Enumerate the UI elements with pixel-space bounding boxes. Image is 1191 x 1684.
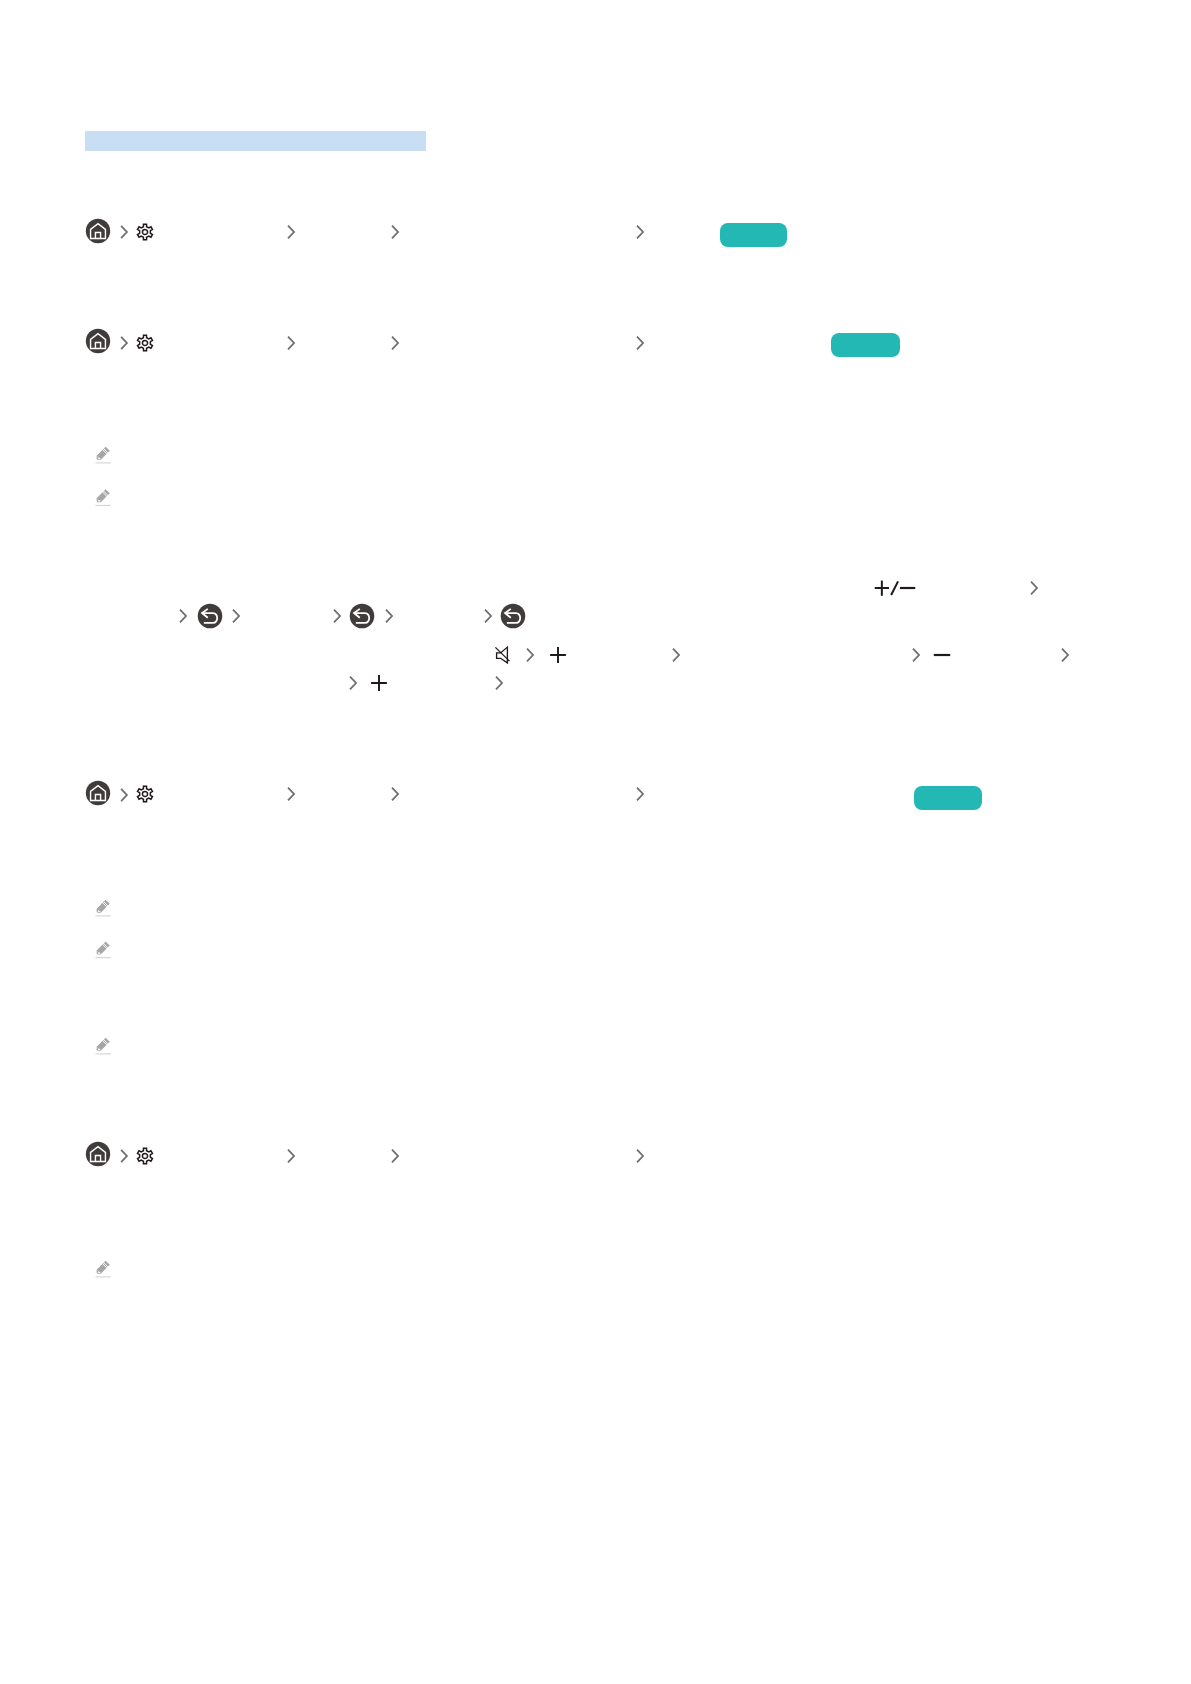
button[interactable]: Remove [931, 644, 953, 666]
button[interactable]: Next [909, 646, 923, 664]
button[interactable]: Next [523, 646, 537, 664]
button[interactable]: Try Now [914, 786, 982, 810]
button[interactable]: Add [547, 644, 569, 666]
button[interactable]: Next [388, 785, 402, 803]
button[interactable]: Next [382, 607, 396, 625]
button[interactable]: Try Now [831, 333, 900, 357]
button[interactable]: Next [229, 607, 243, 625]
button[interactable]: Settings [135, 333, 155, 353]
button[interactable]: Next [117, 334, 131, 352]
button[interactable]: Next [330, 607, 344, 625]
button[interactable]: Settings [135, 784, 155, 804]
button[interactable]: Next [176, 607, 190, 625]
button[interactable]: Next [633, 223, 647, 241]
button[interactable]: Next [633, 1147, 647, 1165]
button[interactable]: Next [284, 334, 298, 352]
button[interactable]: Mute [491, 644, 513, 666]
button[interactable]: Next [284, 1147, 298, 1165]
button[interactable]: Next [117, 786, 131, 804]
button[interactable]: Settings [135, 222, 155, 242]
button[interactable]: Try Now [720, 223, 787, 247]
button[interactable]: Home [85, 328, 111, 354]
button[interactable]: Return [197, 603, 223, 629]
button[interactable]: Return [500, 603, 526, 629]
button[interactable]: Next [388, 223, 402, 241]
button[interactable]: Next [633, 785, 647, 803]
button[interactable]: Next [346, 674, 360, 692]
button[interactable]: Next [1027, 579, 1041, 597]
button[interactable]: Next [117, 223, 131, 241]
button[interactable]: Return [349, 603, 375, 629]
button[interactable]: Next [284, 223, 298, 241]
button[interactable]: Home [85, 218, 111, 244]
button[interactable]: Next [633, 334, 647, 352]
button[interactable]: Next [1058, 646, 1072, 664]
button[interactable]: Next [492, 674, 506, 692]
button[interactable]: Next [284, 785, 298, 803]
button[interactable]: Add [368, 672, 390, 694]
button[interactable]: Home [85, 780, 111, 806]
button[interactable]: Next [388, 1147, 402, 1165]
button[interactable]: Increase or decrease [872, 577, 918, 599]
button[interactable]: Settings [135, 1146, 155, 1166]
button[interactable]: Home [85, 1141, 111, 1167]
button[interactable]: Next [117, 1147, 131, 1165]
button[interactable]: Next [481, 607, 495, 625]
button[interactable]: Next [669, 646, 683, 664]
button[interactable]: Next [388, 334, 402, 352]
